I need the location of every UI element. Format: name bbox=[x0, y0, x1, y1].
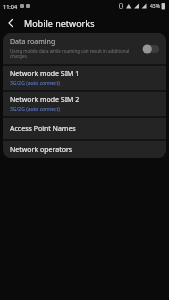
button[interactable]: Data roaming bbox=[3, 33, 166, 64]
button[interactable] bbox=[0, 12, 21, 33]
button[interactable]: Network mode SIM 1 bbox=[3, 66, 166, 90]
button[interactable]: Access Point Names bbox=[3, 118, 166, 139]
staticText: 3G/2G (auto connect) bbox=[10, 80, 60, 87]
staticText: Data roaming bbox=[10, 37, 56, 47]
staticText: 43% bbox=[150, 3, 160, 10]
staticText: Mobile networks bbox=[24, 17, 95, 29]
staticText: Network mode SIM 2 bbox=[10, 95, 80, 105]
staticText: 11:04 bbox=[3, 3, 18, 10]
staticText: Network mode SIM 1 bbox=[10, 69, 80, 79]
button[interactable]: Network operators bbox=[3, 141, 166, 158]
staticText: Network operators bbox=[10, 145, 73, 155]
button[interactable]: Network mode SIM 2 bbox=[3, 92, 166, 116]
staticText: Using mobile data while roaming can resu… bbox=[10, 48, 130, 60]
staticText: 3G/2G (auto connect) bbox=[10, 106, 60, 113]
staticText: Access Point Names bbox=[10, 124, 76, 134]
